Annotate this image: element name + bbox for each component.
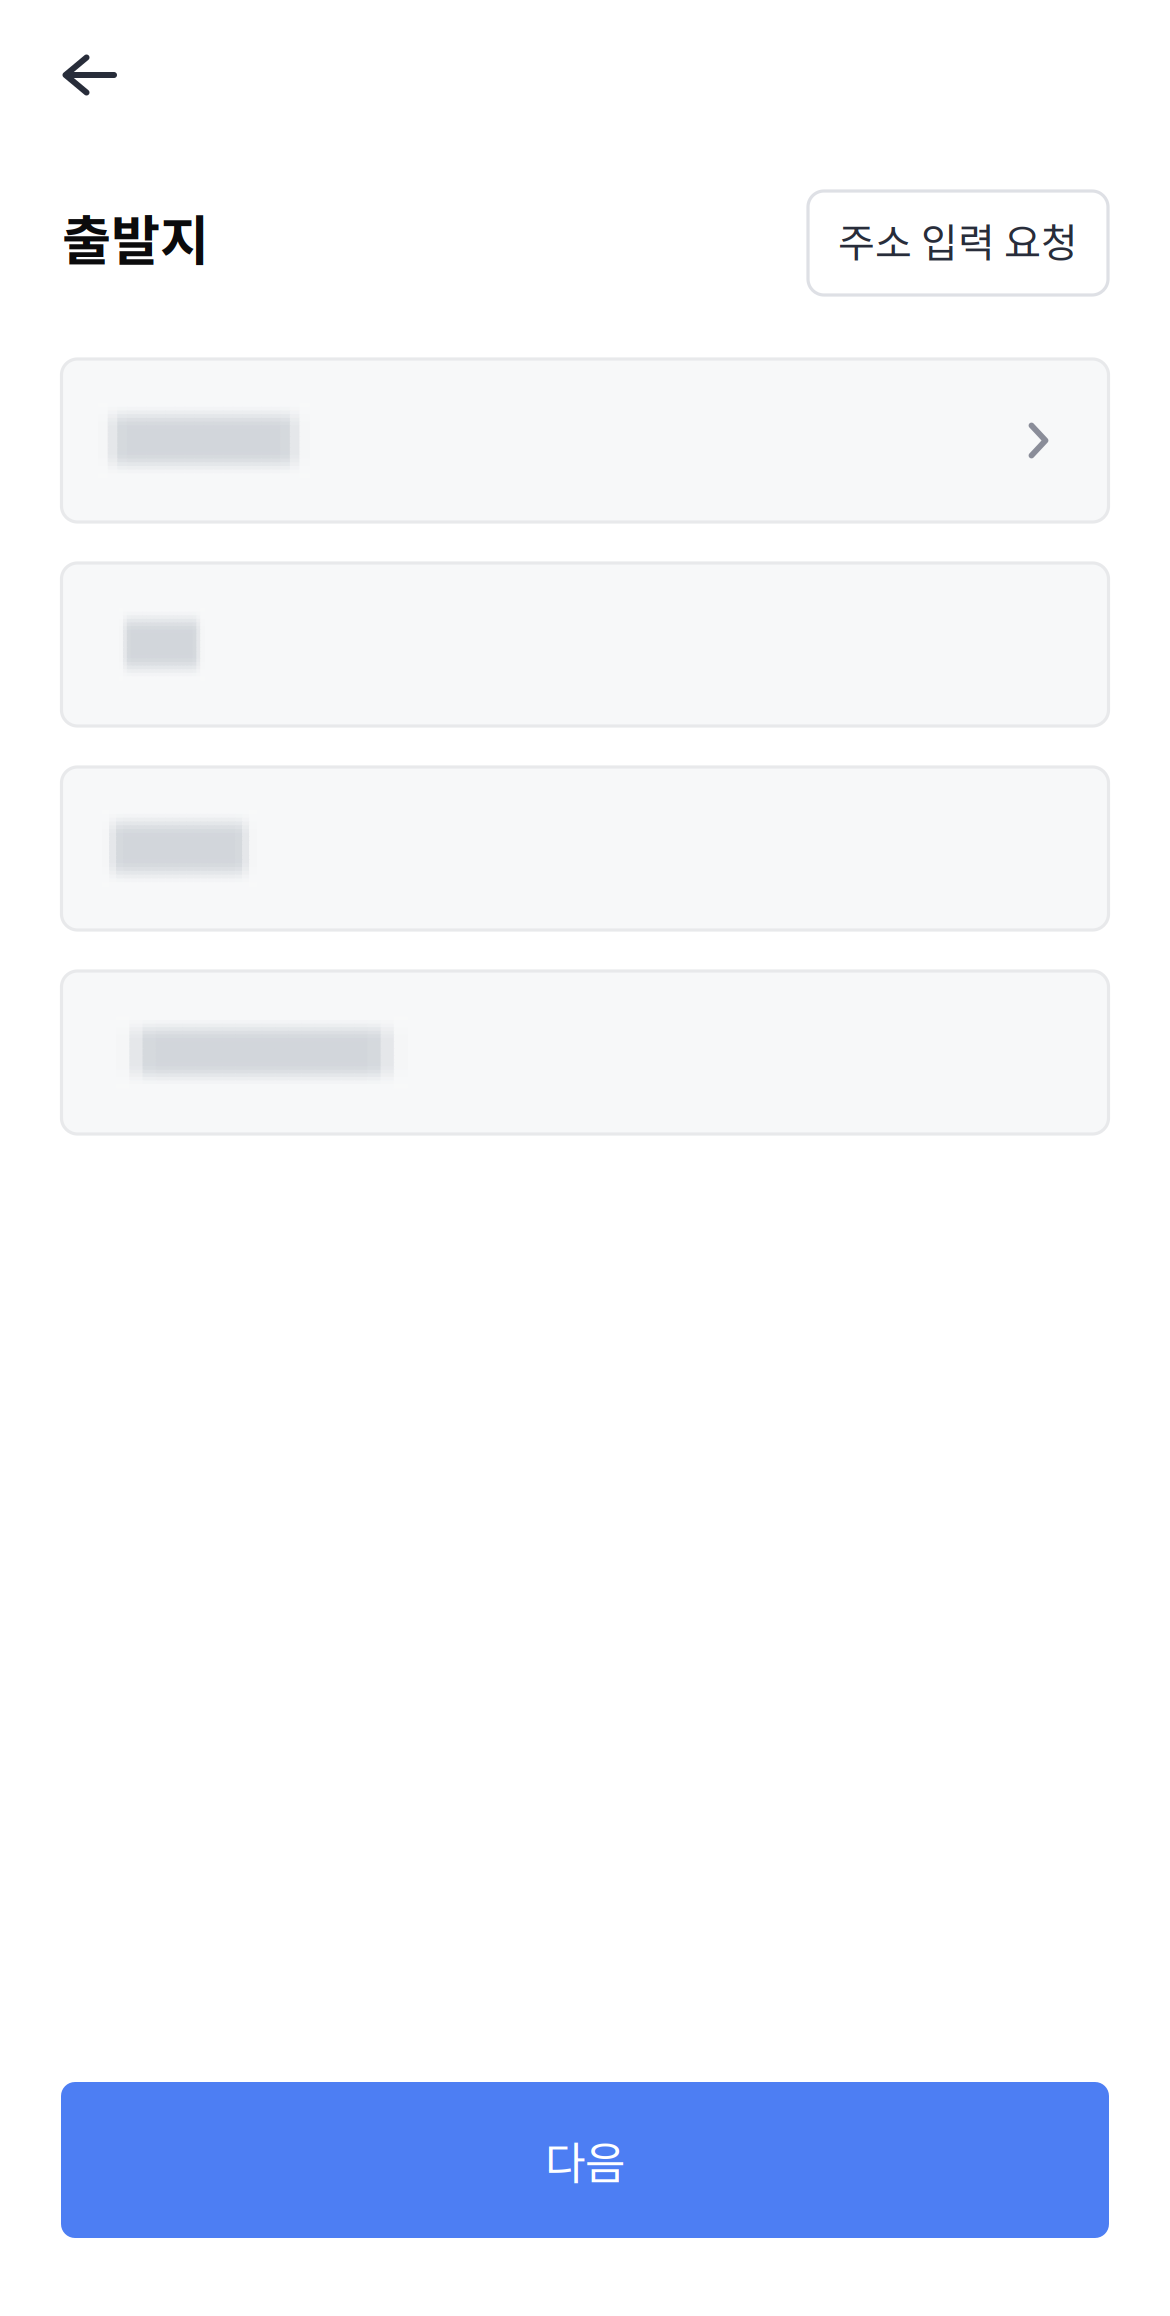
staticText: 다음: [545, 2128, 625, 2192]
button[interactable]: [61, 563, 1108, 726]
button[interactable]: [61, 971, 1108, 1134]
button[interactable]: [61, 359, 1108, 522]
button[interactable]: 다음: [61, 2082, 1109, 2238]
button[interactable]: [61, 767, 1108, 930]
staticText: 출발지: [62, 198, 209, 276]
button[interactable]: 주소 입력 요청: [808, 185, 1108, 289]
button[interactable]: Back: [0, 0, 142, 107]
staticText: 주소 입력 요청: [838, 211, 1078, 269]
